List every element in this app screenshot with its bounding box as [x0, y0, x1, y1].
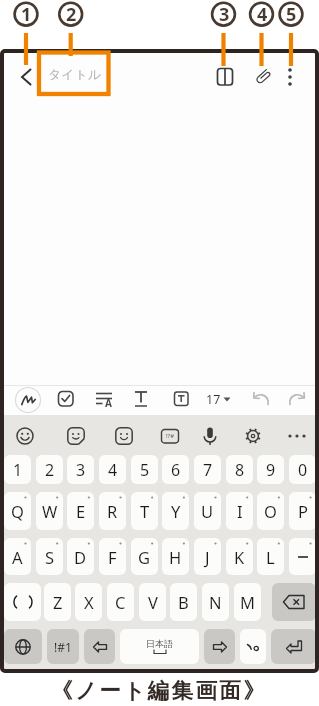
button[interactable]: [14, 386, 42, 414]
button[interactable]: [62, 422, 90, 450]
button[interactable]: O: [257, 492, 284, 530]
staticText: 4: [257, 2, 268, 26]
button[interactable]: A: [90, 385, 118, 413]
button[interactable]: 0: [289, 455, 316, 484]
button[interactable]: [14, 64, 40, 90]
staticText: E: [76, 500, 86, 522]
staticText: 17: [206, 391, 221, 408]
staticText: I: [237, 500, 243, 522]
staticText: 7: [203, 459, 213, 481]
button[interactable]: 5: [131, 455, 158, 484]
staticText: 9: [266, 459, 276, 481]
button[interactable]: V: [139, 583, 166, 621]
staticText: 2: [45, 459, 55, 481]
button[interactable]: 1: [4, 455, 31, 484]
button[interactable]: 3: [67, 455, 94, 484]
button[interactable]: M: [234, 583, 261, 621]
button[interactable]: [11, 422, 39, 450]
button[interactable]: Y: [162, 492, 189, 530]
staticText: 5: [140, 459, 150, 481]
staticText: T: [140, 500, 150, 522]
staticText: !#1: [54, 639, 72, 655]
button[interactable]: [247, 386, 275, 414]
staticText: H: [169, 546, 182, 568]
button[interactable]: 6: [162, 455, 189, 484]
staticText: 《ノート編集画面》: [51, 677, 268, 704]
staticText: A: [105, 396, 112, 410]
button[interactable]: U: [194, 492, 221, 530]
staticText: !?#: [166, 432, 175, 440]
button[interactable]: [271, 629, 316, 664]
button[interactable]: P: [289, 492, 316, 530]
button[interactable]: [196, 422, 224, 450]
staticText: M: [240, 591, 255, 613]
button[interactable]: C: [107, 583, 134, 621]
button[interactable]: [278, 63, 302, 91]
button[interactable]: [283, 386, 311, 414]
staticText: 0: [298, 459, 308, 481]
staticText: Q: [11, 500, 24, 522]
button[interactable]: R: [99, 492, 126, 530]
staticText: 8: [235, 459, 245, 481]
button[interactable]: 2: [36, 455, 63, 484]
staticText: U: [201, 500, 214, 522]
button[interactable]: 日本語: [120, 629, 199, 664]
staticText: 1: [21, 2, 32, 26]
button[interactable]: Z: [44, 583, 71, 621]
button[interactable]: [289, 538, 316, 575]
button[interactable]: [128, 385, 154, 413]
button[interactable]: [249, 63, 277, 91]
staticText: 4: [108, 459, 118, 481]
staticText: A: [12, 546, 23, 568]
button[interactable]: 8: [226, 455, 253, 484]
button[interactable]: X: [75, 583, 102, 621]
button[interactable]: J: [194, 538, 221, 575]
button[interactable]: [240, 629, 266, 664]
button[interactable]: 17: [203, 385, 235, 413]
button[interactable]: [110, 422, 138, 450]
button[interactable]: W: [36, 492, 63, 530]
button[interactable]: !?#: [156, 422, 184, 450]
staticText: 1: [13, 459, 23, 481]
button[interactable]: 4: [99, 455, 126, 484]
staticText: タイトル: [48, 66, 102, 80]
button[interactable]: [239, 422, 267, 450]
button[interactable]: G: [131, 538, 158, 575]
staticText: D: [74, 546, 87, 568]
staticText: W: [42, 500, 58, 522]
button[interactable]: 7: [194, 455, 221, 484]
button[interactable]: Q: [4, 492, 31, 530]
button[interactable]: A: [4, 538, 31, 575]
button[interactable]: D: [67, 538, 94, 575]
button[interactable]: 9: [257, 455, 284, 484]
button[interactable]: [4, 583, 41, 621]
button[interactable]: K: [226, 538, 253, 575]
button[interactable]: [84, 629, 115, 664]
staticText: Y: [171, 500, 181, 522]
staticText: O: [264, 500, 277, 522]
button[interactable]: [211, 63, 239, 91]
button[interactable]: T: [131, 492, 158, 530]
button[interactable]: N: [202, 583, 229, 621]
button[interactable]: [4, 629, 42, 664]
button[interactable]: [52, 385, 80, 413]
button[interactable]: F: [99, 538, 126, 575]
staticText: 6: [171, 459, 181, 481]
button[interactable]: B: [170, 583, 197, 621]
staticText: 5: [286, 2, 297, 26]
staticText: F: [108, 546, 117, 568]
button[interactable]: [204, 629, 235, 664]
button[interactable]: S: [36, 538, 63, 575]
button[interactable]: !#1: [47, 629, 79, 664]
button[interactable]: [272, 583, 316, 621]
staticText: P: [298, 500, 308, 522]
staticText: L: [266, 546, 275, 568]
staticText: N: [209, 591, 222, 613]
button[interactable]: [283, 422, 311, 450]
button[interactable]: H: [162, 538, 189, 575]
button[interactable]: L: [257, 538, 284, 575]
button[interactable]: I: [226, 492, 253, 530]
staticText: 日本語: [146, 638, 173, 649]
button[interactable]: [168, 385, 195, 413]
button[interactable]: E: [67, 492, 94, 530]
